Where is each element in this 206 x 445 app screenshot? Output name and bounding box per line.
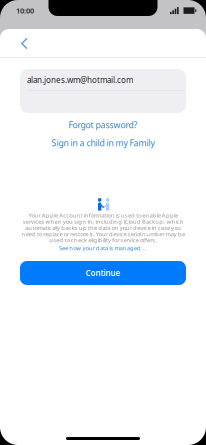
- button[interactable]: Forgot password?: [64, 117, 141, 133]
- staticText: Forgot password?: [68, 119, 137, 131]
- staticText: 10:00: [16, 6, 34, 16]
- button[interactable]: See how your data is managed...: [59, 244, 147, 252]
- button[interactable]: Back: [12, 29, 37, 57]
- staticText: alan.jones.wm@hotmail.com: [27, 75, 133, 85]
- button[interactable]: Sign in a child in my Family: [47, 135, 158, 151]
- button[interactable]: Continue: [20, 261, 186, 285]
- staticText: Continue: [85, 268, 120, 278]
- staticText: Your Apple Account information is used t…: [21, 211, 185, 244]
- staticText: Sign in a child in my Family: [51, 137, 154, 149]
- staticText: See how your data is managed...: [59, 244, 147, 252]
